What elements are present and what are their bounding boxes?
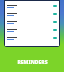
other: Toggle — [53, 29, 57, 31]
other: Toggle — [53, 21, 57, 23]
other: Toggle — [53, 5, 57, 7]
other: Toggle — [53, 37, 57, 39]
button[interactable]: Toggle — [5, 10, 59, 18]
button[interactable]: Toggle — [5, 2, 59, 10]
staticText: REMINDERS — [17, 59, 48, 66]
button[interactable]: Toggle — [5, 34, 59, 42]
button[interactable]: Toggle — [5, 26, 59, 34]
other: Toggle — [53, 13, 57, 15]
button[interactable]: Toggle — [5, 18, 59, 26]
